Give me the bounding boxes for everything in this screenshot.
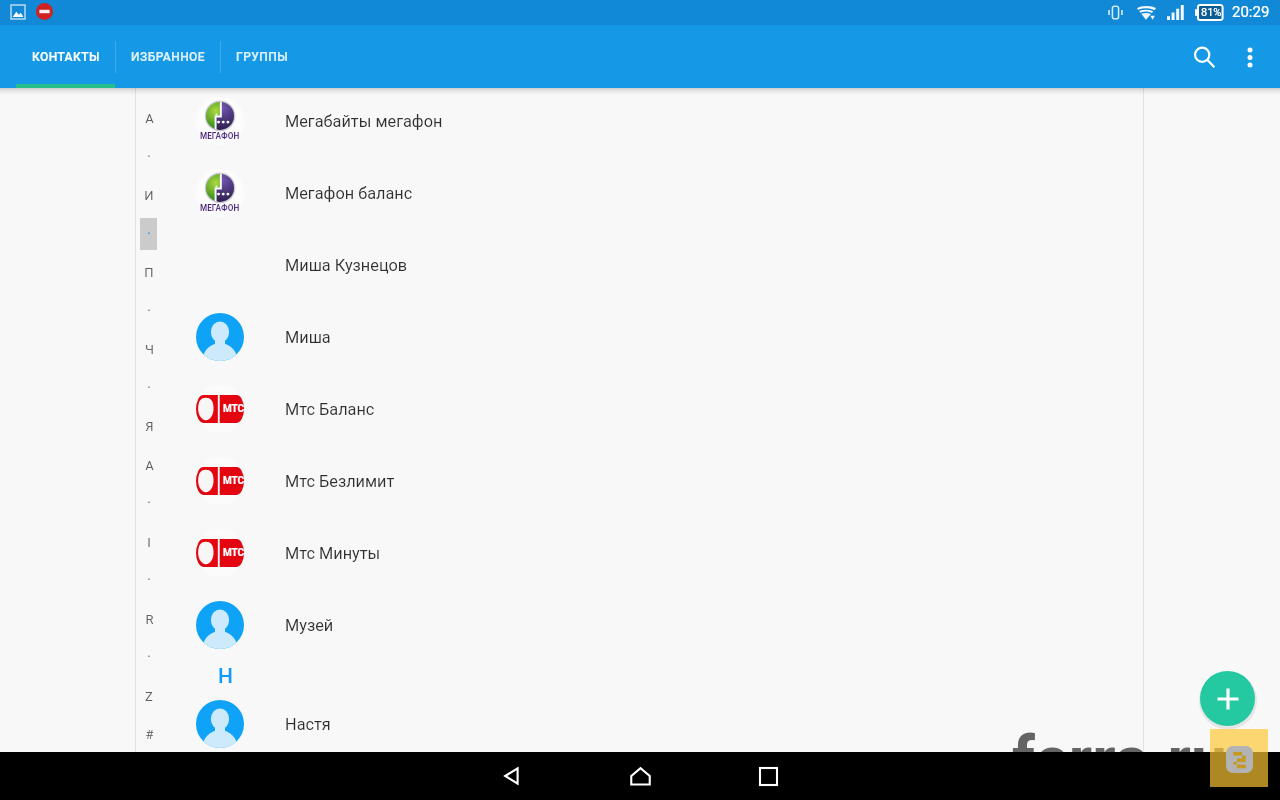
button[interactable]: ·: [136, 638, 162, 676]
button[interactable]: И: [136, 176, 162, 214]
button[interactable]: ГРУППЫ: [221, 25, 303, 88]
staticText: МТС: [223, 475, 244, 487]
staticText: ferra.ru: [1012, 723, 1227, 798]
staticText: Мтс Баланс: [285, 400, 375, 419]
staticText: Мтс Минуты: [285, 544, 381, 563]
button[interactable]: П: [136, 253, 162, 291]
staticText: A: [145, 458, 154, 473]
staticText: R: [145, 612, 154, 627]
button[interactable]: Я: [136, 407, 162, 445]
staticText: Музей: [285, 616, 334, 635]
button[interactable]: ·: [136, 369, 162, 407]
button[interactable]: Ч: [136, 330, 162, 368]
button[interactable]: ·: [136, 484, 162, 522]
staticText: ·: [147, 148, 151, 166]
button[interactable]: #: [136, 715, 162, 753]
button[interactable]: Back: [488, 752, 536, 800]
staticText: КОНТАКТЫ: [32, 50, 100, 64]
button[interactable]: R: [136, 600, 162, 638]
staticText: Я: [145, 419, 154, 434]
staticText: #: [145, 727, 154, 742]
staticText: I: [147, 535, 151, 550]
staticText: ·: [147, 302, 151, 320]
button[interactable]: МТС: [0, 445, 1280, 517]
staticText: П: [144, 265, 154, 280]
button[interactable]: МТС: [0, 373, 1280, 445]
button[interactable]: Home: [616, 752, 664, 800]
button[interactable]: I: [136, 523, 162, 561]
staticText: МЕГАФОН: [200, 131, 240, 141]
staticText: ·: [147, 494, 151, 512]
button[interactable]: Add contact: [1200, 671, 1255, 726]
staticText: ·: [147, 571, 151, 589]
button[interactable]: Search: [1180, 33, 1228, 81]
button[interactable]: A: [136, 446, 162, 484]
staticText: ·: [147, 225, 151, 243]
staticText: ·: [147, 648, 151, 666]
staticText: Ч: [145, 342, 154, 357]
staticText: Z: [145, 689, 153, 704]
staticText: A: [145, 111, 154, 126]
button[interactable]: A: [136, 99, 162, 137]
staticText: И: [144, 188, 154, 203]
staticText: Настя: [285, 715, 331, 734]
staticText: МЕГАФОН: [200, 203, 240, 213]
button[interactable]: ·: [136, 138, 162, 176]
button[interactable]: Настя: [0, 688, 1280, 760]
staticText: МТС: [223, 403, 244, 415]
staticText: ·: [147, 379, 151, 397]
button[interactable]: Recent apps: [744, 752, 792, 800]
button[interactable]: More options: [1228, 35, 1272, 79]
button[interactable]: ·: [136, 215, 162, 253]
staticText: МТС: [223, 547, 244, 559]
staticText: 81%: [1201, 6, 1222, 19]
button[interactable]: ·: [136, 292, 162, 330]
staticText: Н: [218, 664, 233, 689]
staticText: Мегабайты мегафон: [285, 112, 443, 131]
staticText: Миша Кузнецов: [285, 256, 408, 275]
staticText: Миша: [285, 328, 331, 347]
button[interactable]: ferra.ru badge: [1210, 729, 1268, 787]
button[interactable]: Музей: [0, 589, 1280, 661]
button[interactable]: МТС: [0, 517, 1280, 589]
staticText: Мегафон баланс: [285, 184, 413, 203]
button[interactable]: Миша Кузнецов: [0, 229, 1280, 301]
staticText: Мтс Безлимит: [285, 472, 395, 491]
button[interactable]: КОНТАКТЫ: [16, 25, 115, 88]
button[interactable]: МЕГАФОН: [0, 85, 1280, 157]
button[interactable]: ИЗБРАННОЕ: [116, 25, 220, 88]
staticText: 20:29: [1232, 3, 1270, 21]
staticText: ИЗБРАННОЕ: [131, 50, 206, 64]
staticText: ГРУППЫ: [236, 50, 289, 64]
button[interactable]: Миша: [0, 301, 1280, 373]
button[interactable]: ·: [136, 561, 162, 599]
button[interactable]: МЕГАФОН: [0, 157, 1280, 229]
button[interactable]: Z: [136, 677, 162, 715]
